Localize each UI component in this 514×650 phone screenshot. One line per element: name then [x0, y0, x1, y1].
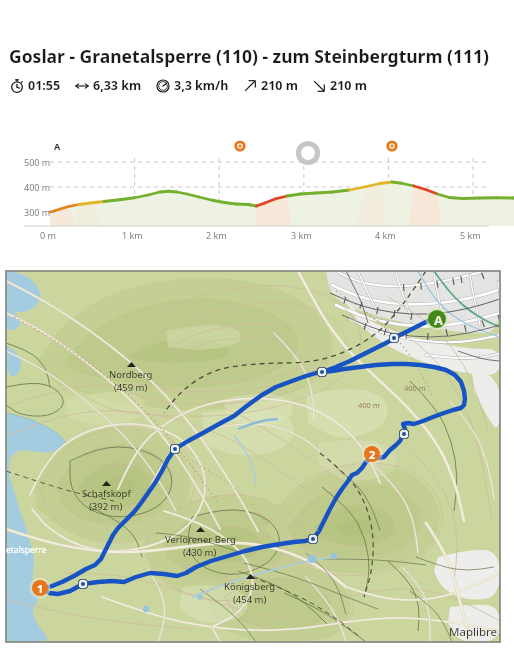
staticText: 5 km — [460, 229, 481, 241]
button[interactable]: 210 m — [243, 77, 298, 94]
staticText: (430 m) — [183, 546, 217, 559]
staticText: 2 km — [206, 229, 227, 241]
staticText: 210 m — [330, 77, 367, 94]
staticText: 6,33 km — [93, 77, 142, 94]
staticText: 400 m — [24, 181, 51, 193]
button[interactable]: 210 m — [312, 77, 367, 94]
staticText: Verlorener Berg — [165, 533, 236, 546]
staticText: 4 km — [375, 229, 396, 241]
staticText: (459 m) — [114, 381, 148, 394]
staticText: 3 km — [291, 229, 312, 241]
staticText: 0 m — [40, 229, 56, 241]
staticText: Goslar - Granetalsperre (110) - zum Stei… — [9, 44, 489, 68]
staticText: Nordberg — [109, 368, 153, 381]
staticText: 1 km — [122, 229, 143, 241]
staticText: 210 m — [261, 77, 298, 94]
button[interactable]: 01:55 — [10, 77, 61, 94]
staticText: (454 m) — [233, 593, 267, 606]
staticText: (392 m) — [89, 500, 123, 513]
staticText: 01:55 — [28, 77, 61, 94]
staticText: 500 m — [24, 156, 51, 168]
staticText: A — [434, 311, 443, 327]
staticText: 400 m — [404, 383, 426, 393]
staticText: Maplibre — [449, 624, 497, 640]
staticText: Schafskopf — [82, 487, 131, 500]
staticText: Königsberg — [224, 580, 276, 593]
staticText: 1 — [37, 581, 44, 596]
staticText: 300 m — [24, 206, 51, 218]
staticText: etalsperre — [6, 544, 47, 556]
button[interactable]: Route map, open full screen — [6, 271, 500, 642]
button[interactable]: 3,3 km/h — [156, 77, 229, 94]
staticText: A — [54, 140, 61, 152]
staticText: 3,3 km/h — [174, 77, 229, 94]
button[interactable]: 6,33 km — [75, 77, 142, 94]
staticText: 400 m — [358, 400, 380, 410]
staticText: 2 — [369, 447, 376, 462]
